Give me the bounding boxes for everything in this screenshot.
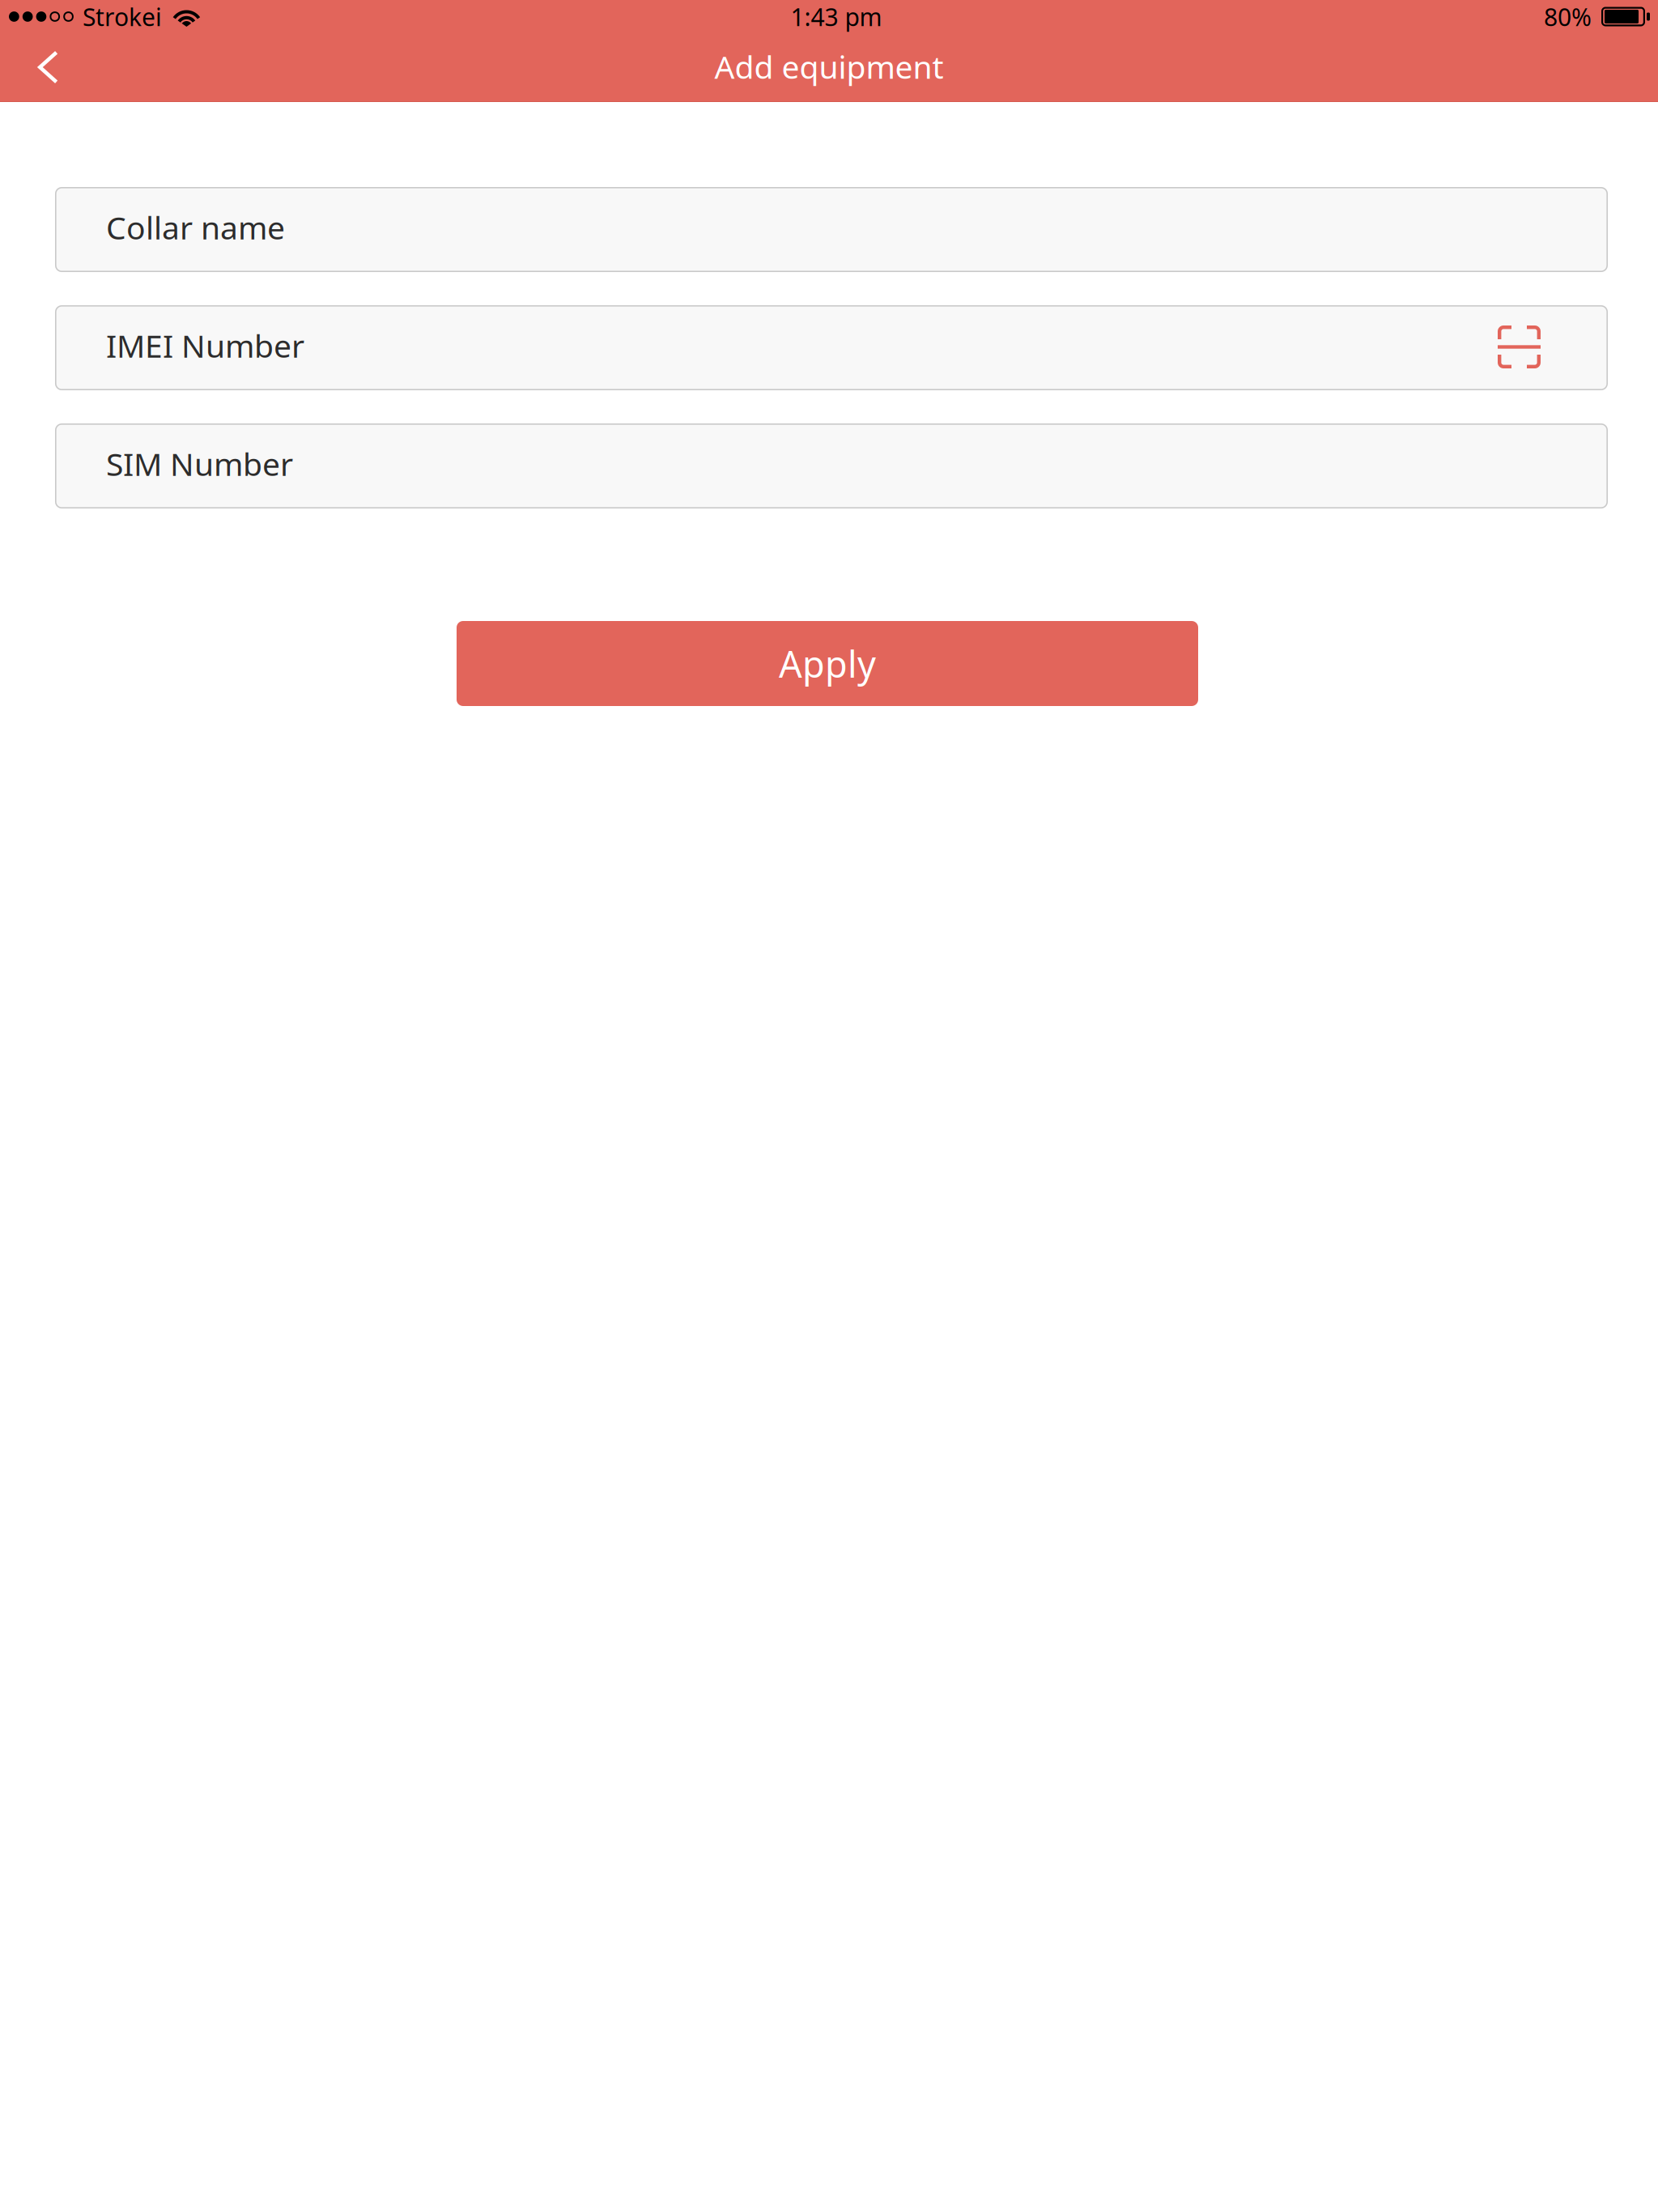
button[interactable]: IMEI Number <box>55 305 1608 390</box>
staticText: Strokei <box>82 0 162 33</box>
button[interactable]: Collar name <box>55 187 1608 272</box>
staticText: Add equipment <box>714 45 944 88</box>
staticText: 80% <box>1544 0 1592 33</box>
staticText: SIM Number <box>106 442 293 485</box>
staticText: Apply <box>779 639 876 688</box>
button[interactable]: Back <box>0 44 82 98</box>
staticText: Collar name <box>106 206 285 249</box>
button[interactable]: Scan barcode <box>1498 326 1541 369</box>
staticText: 1:43 pm <box>791 0 882 33</box>
button[interactable]: SIM Number <box>55 423 1608 508</box>
staticText: IMEI Number <box>106 324 304 367</box>
button[interactable]: Apply <box>457 621 1198 706</box>
